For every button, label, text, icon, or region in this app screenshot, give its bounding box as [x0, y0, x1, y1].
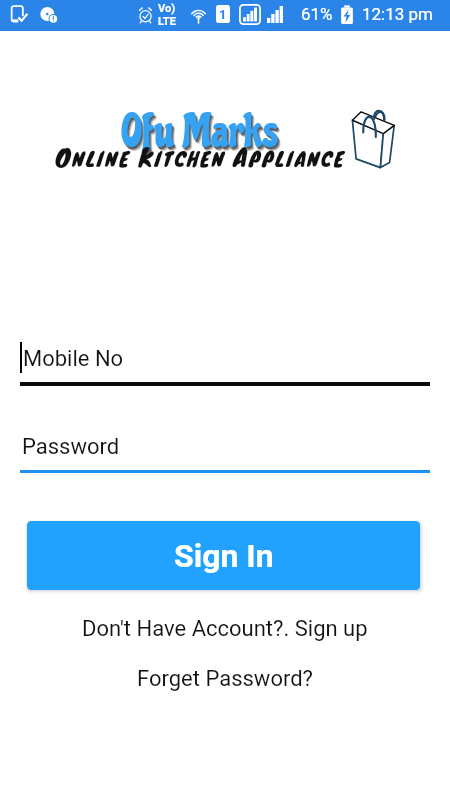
staticText: Ofu Marks	[121, 105, 279, 159]
button[interactable]: Mobile No	[20, 340, 430, 386]
staticText: Sign In	[174, 537, 274, 575]
staticText: Mobile No	[23, 346, 124, 372]
button[interactable]: Password	[20, 428, 430, 473]
other: Shopping bag logo	[352, 107, 396, 171]
button[interactable]: Don't Have Account?. Sign up	[82, 616, 368, 642]
staticText: 61%	[301, 4, 333, 24]
staticText: Password	[22, 434, 120, 460]
staticText: ONLINE KITCHEN APPLIANCE	[55, 138, 346, 175]
staticText: LTE	[158, 15, 176, 28]
staticText: Ofu Marks	[122, 107, 280, 161]
staticText: Vo)	[158, 2, 176, 15]
staticText: Ofu Marks	[124, 109, 282, 163]
staticText: Ofu Marks	[123, 108, 281, 162]
button[interactable]: Forget Password?	[137, 666, 313, 692]
staticText: 1	[219, 7, 227, 22]
button[interactable]: Sign In	[27, 521, 420, 590]
staticText: 12:13 pm	[362, 4, 434, 24]
